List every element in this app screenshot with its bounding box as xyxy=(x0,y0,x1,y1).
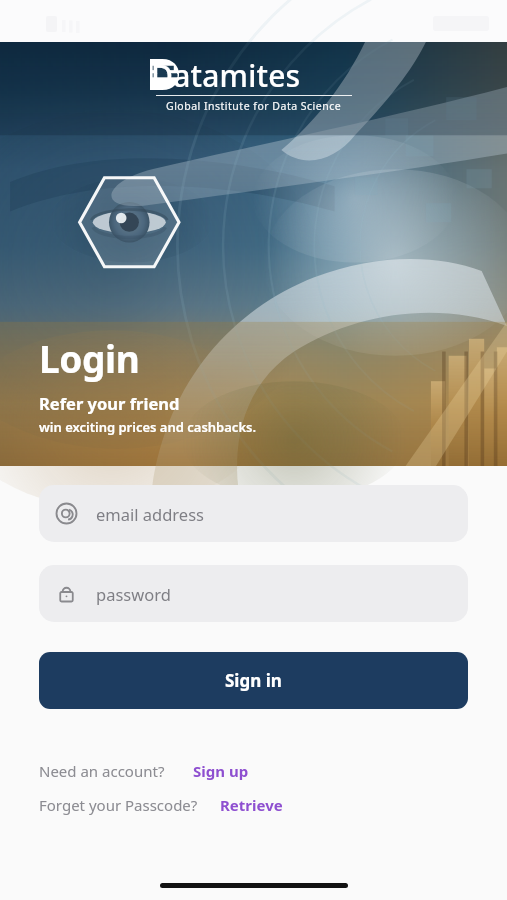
button[interactable]: email address xyxy=(39,485,468,542)
staticText: Sign up xyxy=(193,761,249,781)
staticText: Retrieve xyxy=(220,795,283,815)
staticText: password xyxy=(96,583,171,605)
staticText: Global Institute for Data Science xyxy=(166,99,342,113)
staticText: Login xyxy=(39,333,140,383)
staticText: Forget your Passcode? xyxy=(39,795,198,815)
button[interactable]: Retrieve xyxy=(220,795,283,815)
staticText: win exciting prices and cashbacks. xyxy=(39,418,257,436)
staticText: Need an account? xyxy=(39,761,165,781)
button[interactable]: password xyxy=(39,565,468,622)
staticText: Datamites xyxy=(151,55,301,94)
staticText: email address xyxy=(96,503,204,525)
staticText: Sign in xyxy=(225,669,282,692)
button[interactable]: Sign up xyxy=(193,761,249,781)
other: Home xyxy=(160,883,348,888)
staticText: Refer your friend xyxy=(39,392,180,414)
button[interactable]: Sign in xyxy=(39,652,468,709)
